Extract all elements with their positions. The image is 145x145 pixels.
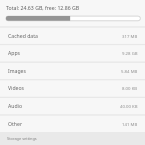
staticText: Videos: [8, 84, 25, 91]
staticText: 8.00 KB: [122, 85, 138, 91]
button[interactable]: Audio: [0, 97, 145, 115]
staticText: Other: [8, 120, 23, 127]
button[interactable]: Cached data: [0, 27, 145, 45]
staticText: 5.84 MB: [121, 68, 138, 74]
staticText: Total: 24.63 GB, free: 12.86 GB: [6, 4, 80, 11]
staticText: Storage settings: [7, 136, 37, 141]
staticText: 40.00 KB: [120, 103, 138, 109]
button[interactable]: Other: [0, 115, 145, 133]
staticText: 9.28 GB: [122, 50, 138, 56]
button[interactable]: Videos: [0, 79, 145, 97]
button[interactable]: Storage settings: [0, 132, 145, 145]
button[interactable]: Images: [0, 62, 145, 80]
staticText: Cached data: [8, 32, 38, 39]
staticText: Images: [8, 67, 26, 74]
staticText: Audio: [8, 102, 23, 109]
staticText: Apps: [8, 49, 21, 56]
staticText: 141 MB: [122, 121, 138, 127]
button[interactable]: Apps: [0, 44, 145, 62]
staticText: 317 MB: [122, 33, 138, 39]
